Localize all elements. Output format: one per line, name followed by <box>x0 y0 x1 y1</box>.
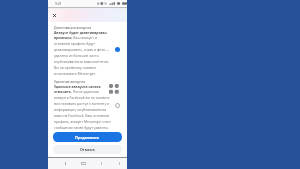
staticText: 9:41 <box>55 1 62 6</box>
button[interactable]: Продолжить <box>53 132 122 142</box>
button[interactable]: Close <box>51 12 58 19</box>
staticText: Аккаунт будет деактивирован временно. Ва… <box>54 30 111 76</box>
staticText: Продолжить <box>75 135 100 140</box>
button[interactable]: Отмена <box>53 145 122 154</box>
button[interactable]: Back <box>63 161 68 166</box>
button[interactable]: Деактивация аккаунта <box>54 25 124 76</box>
button[interactable]: More <box>117 161 122 166</box>
staticText: Удаление аккаунта <box>54 79 86 84</box>
staticText: Удаление аккаунта нельзя отменить. После… <box>54 84 111 130</box>
staticText: Деактивация аккаунта <box>54 25 92 30</box>
staticText: Отмена <box>80 147 95 152</box>
button[interactable]: Home <box>81 161 86 166</box>
button[interactable]: Recents <box>99 161 104 166</box>
button[interactable]: Удаление аккаунта <box>54 79 124 130</box>
